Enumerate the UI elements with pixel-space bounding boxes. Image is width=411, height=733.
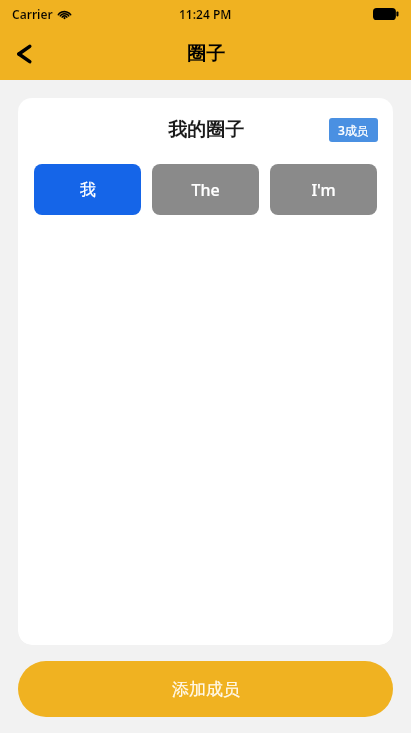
staticText: The — [191, 179, 220, 201]
staticText: Carrier — [12, 6, 53, 22]
staticText: 我的圈子 — [168, 118, 244, 142]
button[interactable]: 添加成员 — [18, 661, 393, 717]
button[interactable]: The — [152, 164, 259, 215]
staticText: 3成员 — [338, 122, 369, 138]
button[interactable]: Back — [0, 30, 48, 78]
staticText: I'm — [311, 179, 336, 201]
button[interactable]: I'm — [270, 164, 377, 215]
staticText: 圈子 — [187, 42, 225, 66]
staticText: 11:24 PM — [179, 6, 232, 22]
button[interactable]: 3成员 — [329, 118, 378, 142]
staticText: 我 — [80, 180, 96, 200]
button[interactable]: 我 — [34, 164, 141, 215]
staticText: 添加成员 — [172, 679, 240, 700]
